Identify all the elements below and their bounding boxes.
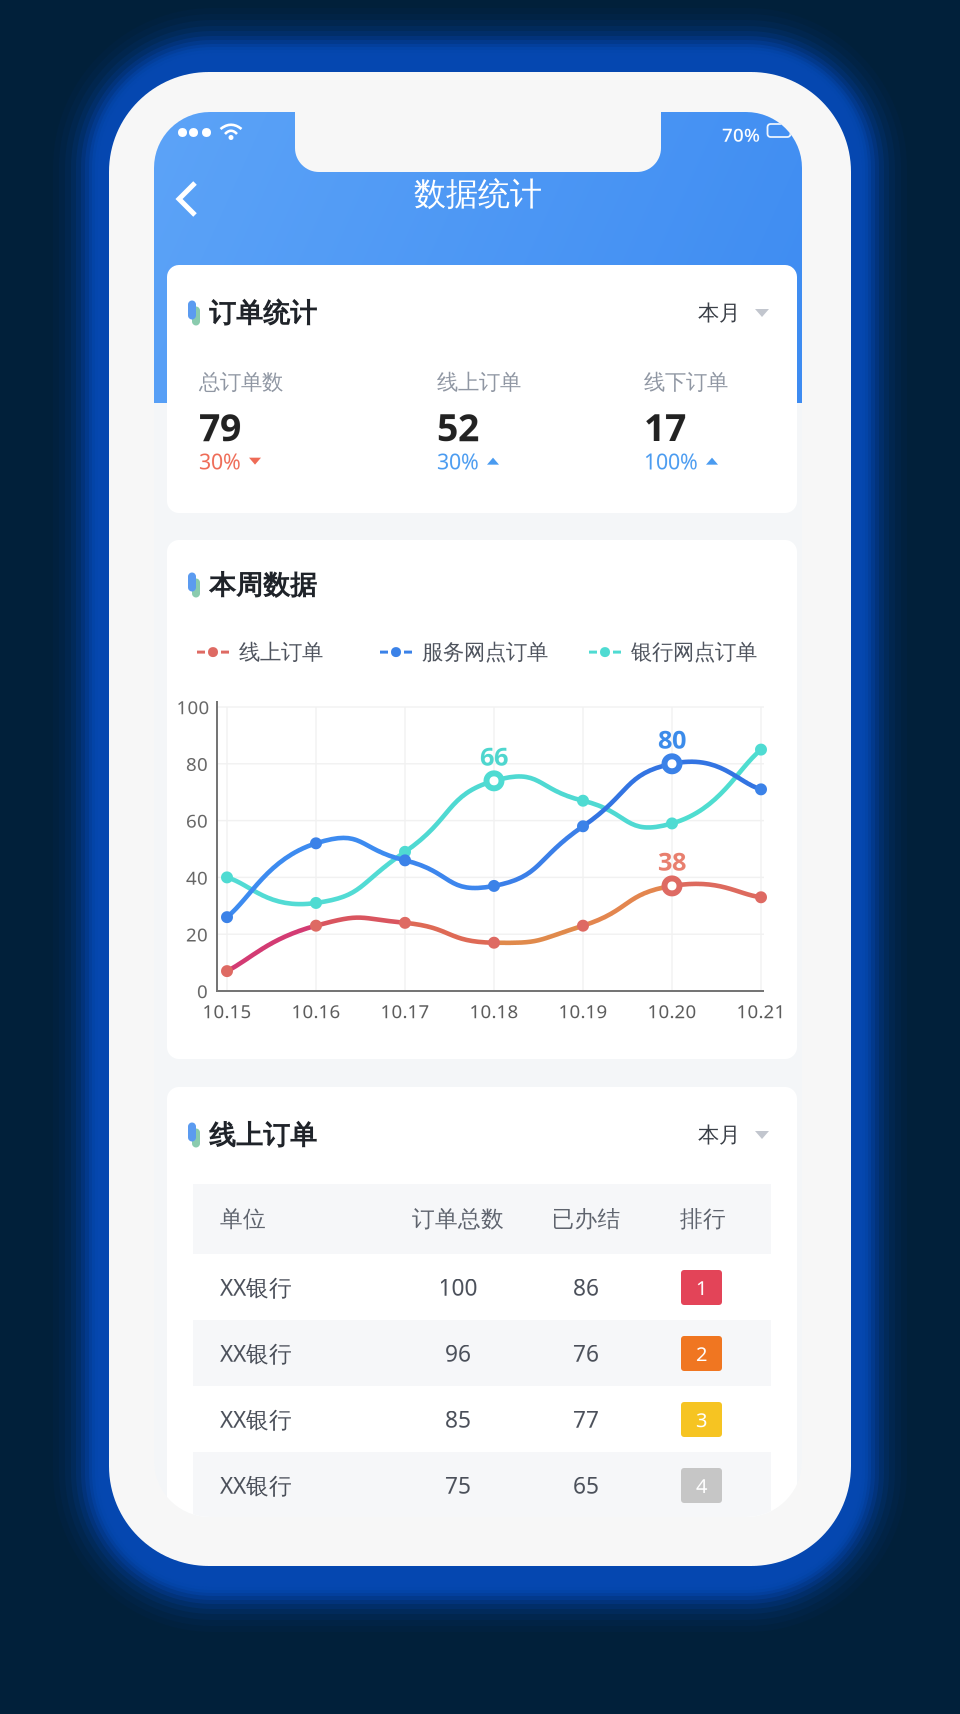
staticText: 1 xyxy=(696,1274,707,1301)
staticText: 40 xyxy=(186,865,208,890)
staticText: 79 xyxy=(199,402,241,452)
staticText: 4 xyxy=(696,1472,707,1499)
staticText: 96 xyxy=(445,1338,471,1368)
staticText: 100 xyxy=(176,695,209,719)
staticText: 100 xyxy=(438,1272,477,1302)
staticText: 30% xyxy=(437,447,479,475)
staticText: 总订单数 xyxy=(199,369,283,395)
staticText: XX银行 xyxy=(220,1404,292,1434)
staticText: 30% xyxy=(199,447,241,475)
staticText: 银行网点订单 xyxy=(631,639,757,665)
staticText: 本月 xyxy=(698,1122,740,1148)
staticText: 20 xyxy=(186,922,208,947)
staticText: 排行 xyxy=(680,1205,726,1233)
staticText: 75 xyxy=(445,1470,471,1500)
staticText: 10.18 xyxy=(469,999,518,1023)
staticText: 线上订单 xyxy=(209,1119,317,1151)
staticText: 0 xyxy=(197,979,208,1003)
staticText: 52 xyxy=(437,402,479,452)
staticText: 80 xyxy=(658,722,686,756)
button[interactable]: 本月 xyxy=(698,1114,771,1156)
staticText: 线上订单 xyxy=(437,369,521,395)
staticText: 单位 xyxy=(220,1205,266,1233)
staticText: 17 xyxy=(644,402,686,452)
staticText: 80 xyxy=(186,751,208,776)
button[interactable]: Back xyxy=(154,162,216,226)
staticText: 10.15 xyxy=(202,999,251,1023)
staticText: 订单统计 xyxy=(209,297,317,329)
staticText: 10.20 xyxy=(647,999,696,1023)
staticText: 订单总数 xyxy=(412,1205,504,1233)
staticText: 10.16 xyxy=(291,999,340,1023)
staticText: 10.21 xyxy=(736,999,785,1023)
staticText: 2 xyxy=(696,1340,707,1367)
staticText: 本月 xyxy=(698,300,740,326)
staticText: 数据统计 xyxy=(414,174,542,214)
staticText: 10.17 xyxy=(380,999,429,1023)
staticText: 线下订单 xyxy=(644,369,728,395)
button[interactable]: 本月 xyxy=(698,292,771,334)
staticText: XX银行 xyxy=(220,1272,292,1302)
staticText: XX银行 xyxy=(220,1338,292,1368)
staticText: 85 xyxy=(445,1404,471,1434)
staticText: 70% xyxy=(722,122,760,147)
staticText: 服务网点订单 xyxy=(422,639,548,665)
staticText: 本周数据 xyxy=(209,569,317,601)
staticText: 10.19 xyxy=(558,999,607,1023)
staticText: 线上订单 xyxy=(239,639,323,665)
staticText: 66 xyxy=(480,739,508,773)
staticText: 3 xyxy=(696,1406,707,1433)
staticText: XX银行 xyxy=(220,1470,292,1500)
staticText: 38 xyxy=(658,844,686,878)
staticText: 77 xyxy=(573,1404,599,1434)
staticText: 86 xyxy=(573,1272,599,1302)
staticText: 76 xyxy=(573,1338,599,1368)
staticText: 已办结 xyxy=(551,1205,620,1233)
staticText: 65 xyxy=(573,1470,599,1500)
staticText: 100% xyxy=(644,447,698,475)
staticText: 60 xyxy=(186,808,208,833)
